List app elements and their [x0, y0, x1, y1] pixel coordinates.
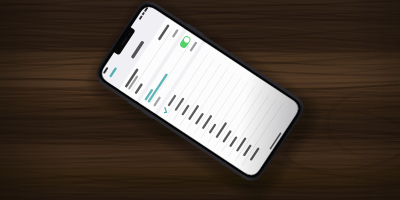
button[interactable]: Phone on wooden desk	[0, 0, 400, 200]
